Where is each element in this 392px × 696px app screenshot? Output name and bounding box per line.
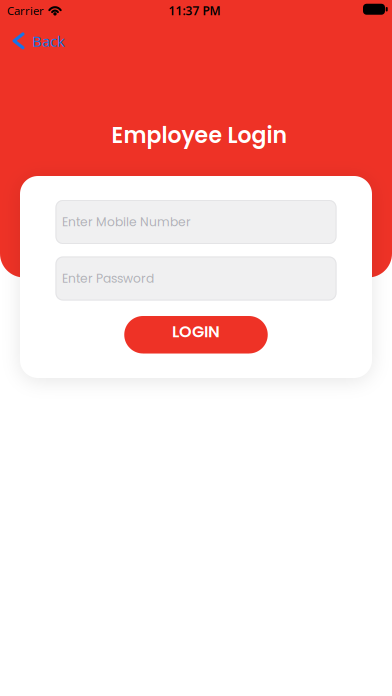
staticText: Employee Login [111, 120, 287, 151]
staticText: Carrier [7, 3, 44, 18]
staticText: 11:37 PM [168, 2, 220, 19]
button[interactable]: Enter Password [55, 256, 336, 300]
staticText: Enter Password [62, 270, 154, 287]
staticText: LOGIN [172, 321, 220, 343]
staticText: Enter Mobile Number [62, 213, 191, 231]
button[interactable]: Enter Mobile Number [55, 200, 336, 244]
button[interactable]: Back [0, 29, 71, 53]
staticText: Back [32, 31, 65, 51]
button[interactable]: LOGIN [124, 316, 268, 353]
